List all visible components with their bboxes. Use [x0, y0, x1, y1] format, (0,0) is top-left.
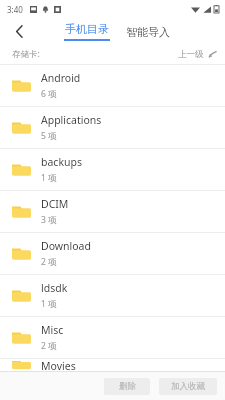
staticText: Android	[41, 71, 81, 85]
button[interactable]: Android	[0, 65, 225, 106]
button[interactable]: ldsdk	[0, 275, 225, 316]
staticText: 存储卡:	[12, 48, 40, 60]
button[interactable]: Applications	[0, 107, 225, 148]
staticText: DCIM	[41, 197, 69, 211]
button[interactable]: 上一级	[178, 44, 225, 64]
button[interactable]: Download	[0, 233, 225, 274]
button[interactable]: Misc	[0, 317, 225, 358]
button[interactable]: 智能导入	[124, 23, 172, 41]
button[interactable]: backups	[0, 149, 225, 190]
button[interactable]: DCIM	[0, 191, 225, 232]
staticText: 3 项	[41, 214, 57, 226]
staticText: backups	[41, 155, 82, 169]
staticText: 5 项	[41, 130, 57, 142]
staticText: 上一级	[178, 49, 204, 60]
button[interactable]: 删除	[104, 378, 150, 395]
staticText: Download	[41, 239, 91, 253]
staticText: 智能导入	[126, 25, 170, 39]
staticText: 6 项	[41, 88, 57, 100]
button[interactable]: 手机目录	[62, 22, 112, 41]
staticText: 1 项	[41, 298, 57, 310]
staticText: 3:40	[7, 4, 23, 15]
button[interactable]: Back	[0, 18, 38, 44]
staticText: 手机目录	[65, 22, 109, 36]
staticText: Applications	[41, 113, 102, 127]
staticText: Movies	[41, 359, 76, 371]
staticText: 1 项	[41, 172, 57, 184]
button[interactable]: 加入收藏	[159, 378, 217, 395]
button[interactable]: Movies	[0, 359, 225, 371]
staticText: 2 项	[41, 256, 57, 268]
staticText: Misc	[41, 323, 64, 337]
staticText: ldsdk	[41, 281, 68, 295]
staticText: 删除	[119, 381, 136, 392]
staticText: 加入收藏	[171, 381, 205, 392]
staticText: 2 项	[41, 340, 57, 352]
